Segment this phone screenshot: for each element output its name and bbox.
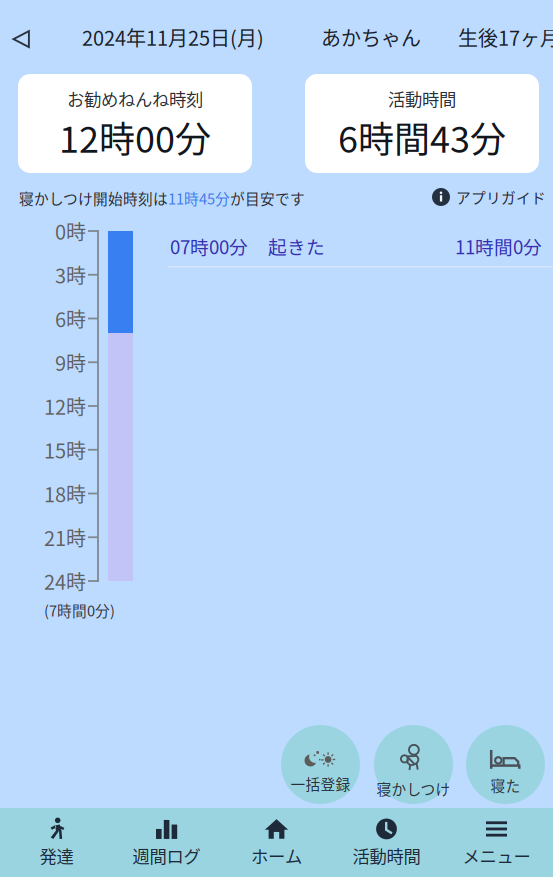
staticText: メニュー (462, 843, 530, 868)
staticText: 15時 (44, 435, 86, 464)
staticText: 寝た (490, 774, 520, 796)
staticText: あかちゃん (321, 22, 421, 51)
staticText: 6時 (55, 304, 86, 333)
staticText: 11時45分 (168, 187, 230, 209)
button[interactable]: 一括登録 (281, 725, 360, 804)
staticText: 週間ログ (132, 843, 200, 868)
button[interactable]: 寝かしつけ (374, 725, 453, 804)
staticText: 2024年11月25日(月) (82, 22, 264, 51)
button[interactable]: お勧めねんね時刻 (18, 74, 252, 173)
staticText: 18時 (44, 479, 86, 508)
staticText: 寝かしつけ (376, 778, 450, 799)
staticText: 生後17ヶ月 (458, 22, 553, 51)
button[interactable]: メニュー (441, 808, 551, 877)
staticText: 12時00分 (59, 111, 211, 163)
staticText: 9時 (55, 348, 86, 377)
staticText: 11時間0分 (455, 232, 542, 259)
staticText: (7時間0分) (44, 599, 115, 621)
button[interactable]: 活動時間 (305, 74, 539, 173)
button[interactable]: 週間ログ (111, 808, 221, 877)
staticText: 寝かしつけ開始時刻は (19, 187, 168, 209)
staticText: 24時 (44, 566, 86, 595)
staticText: 6時間43分 (338, 111, 506, 163)
button[interactable]: ホーム (221, 808, 331, 877)
button[interactable]: アプリガイド (432, 186, 548, 208)
staticText: 一括登録 (290, 773, 350, 794)
staticText: 12時 (44, 391, 86, 420)
staticText: が目安です (230, 187, 305, 209)
staticText: 21時 (44, 523, 86, 552)
staticText: お勧めねんね時刻 (67, 86, 203, 111)
button[interactable]: 活動時間 (331, 808, 441, 877)
staticText: 0時 (55, 216, 86, 245)
staticText: 3時 (55, 260, 86, 289)
staticText: 活動時間 (352, 843, 420, 868)
staticText: 起きた (268, 232, 325, 259)
staticText: 活動時間 (388, 86, 456, 111)
button[interactable]: 寝た (466, 725, 545, 804)
staticText: アプリガイド (456, 186, 546, 208)
button[interactable]: 07時00分 (170, 233, 542, 259)
staticText: 07時00分 (170, 232, 248, 259)
button[interactable]: 戻る (3, 24, 39, 54)
button[interactable]: 発達 (1, 808, 111, 877)
staticText: ホーム (251, 843, 302, 868)
staticText: 発達 (39, 843, 73, 868)
